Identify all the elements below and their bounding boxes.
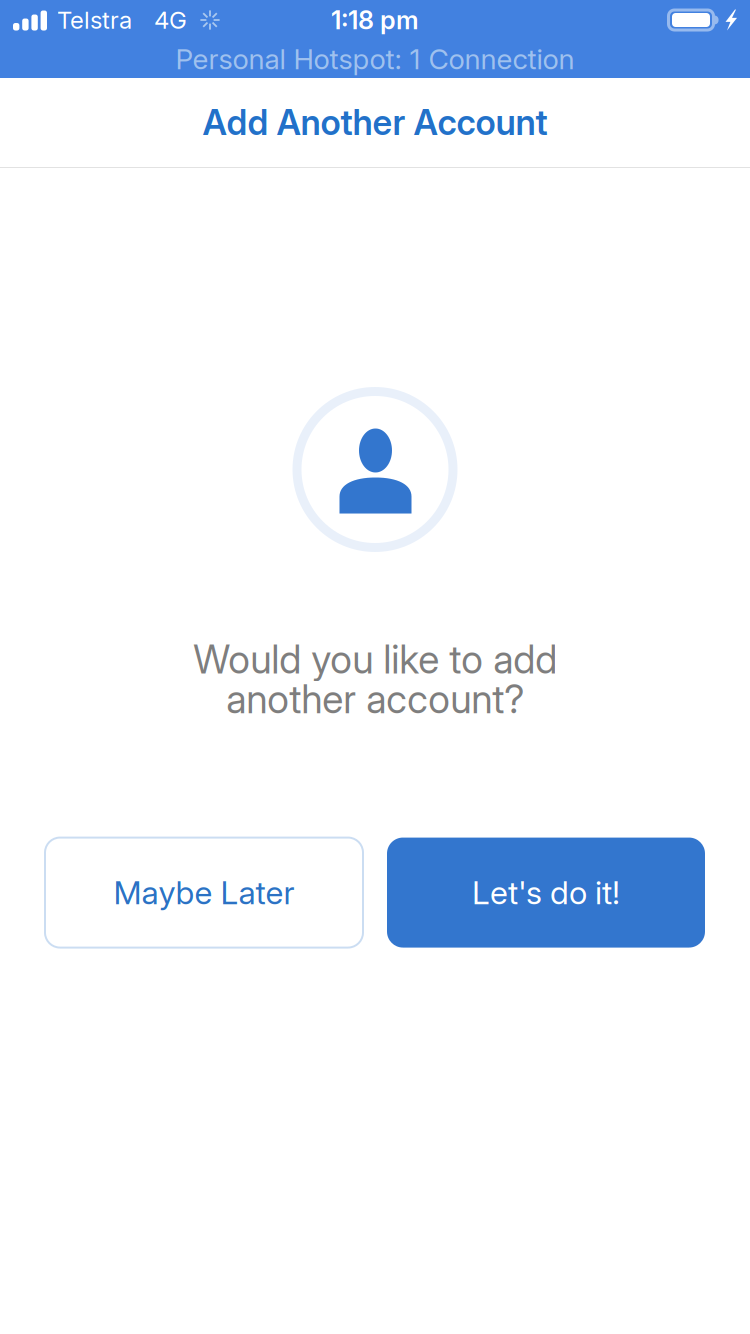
staticText: Maybe Later xyxy=(113,873,294,912)
button[interactable]: Maybe Later xyxy=(45,838,363,948)
staticText: Add Another Account xyxy=(202,101,547,143)
staticText: Telstra xyxy=(57,5,132,34)
staticText: Would you like to add another account? xyxy=(193,636,557,723)
staticText: Personal Hotspot: 1 Connection xyxy=(175,42,574,76)
staticText: Let's do it! xyxy=(472,873,620,912)
staticText: 4G xyxy=(154,5,187,34)
staticText: 1:18 pm xyxy=(331,5,419,35)
button[interactable]: Add Another Account xyxy=(0,78,750,167)
button[interactable]: Let's do it! xyxy=(387,838,705,948)
